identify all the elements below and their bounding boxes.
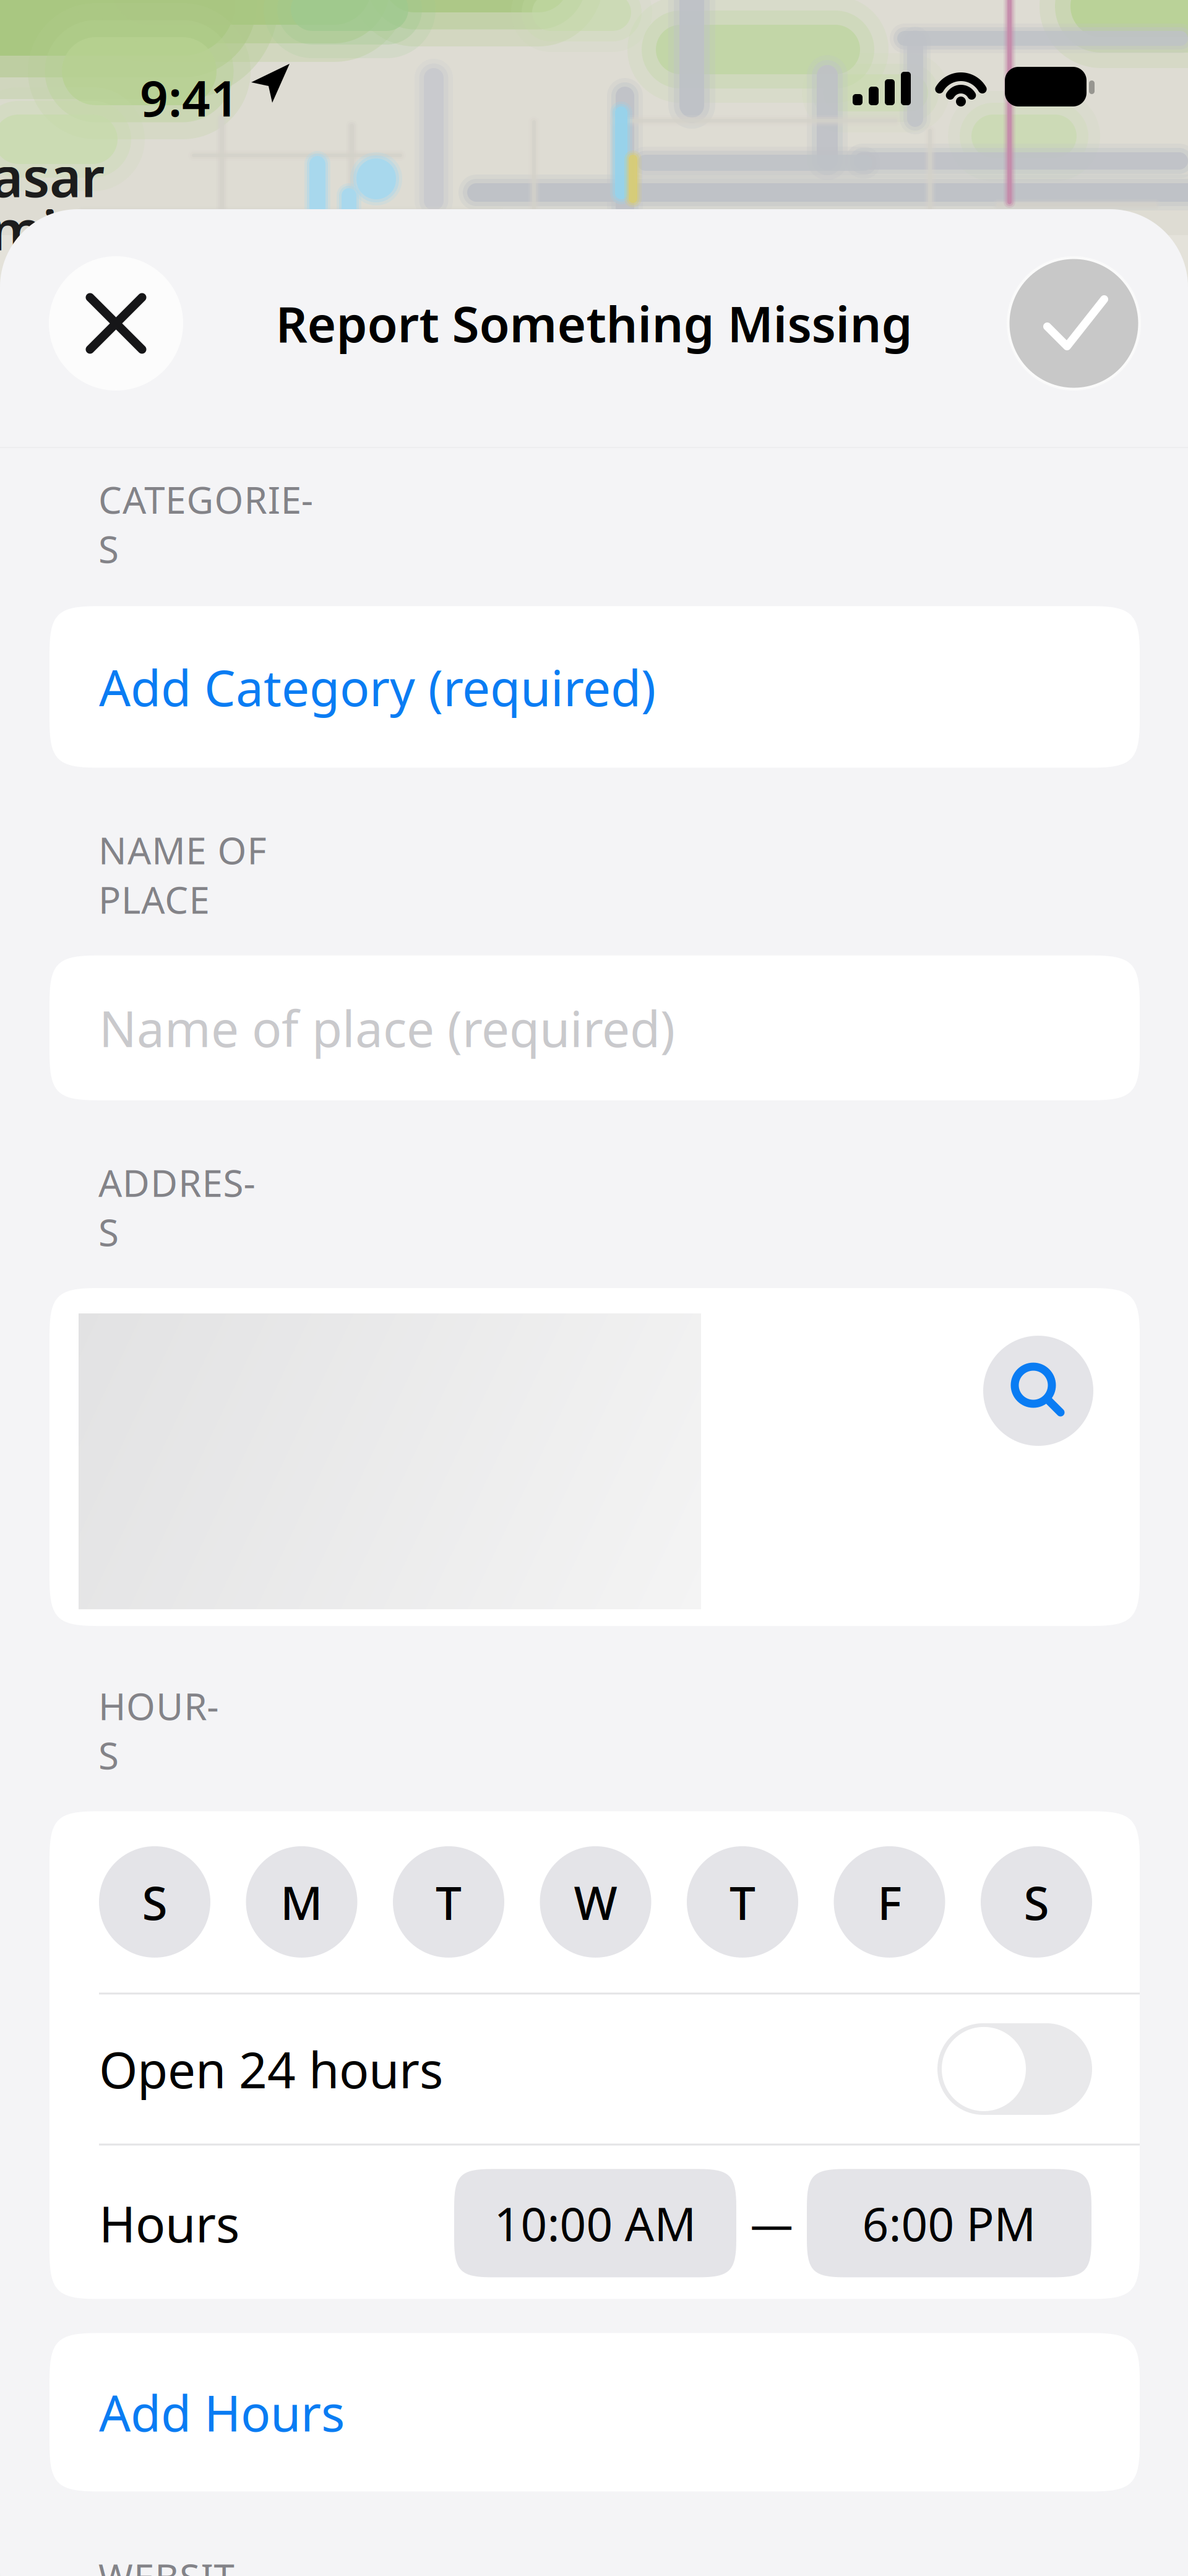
- staticText: CATEGORIES: [98, 475, 313, 573]
- staticText: Hours: [99, 2190, 239, 2256]
- button[interactable]: 10:00 AM: [454, 2169, 736, 2277]
- staticText: S: [1024, 1871, 1049, 1933]
- staticText: Add Category (required): [99, 654, 656, 720]
- staticText: Name of place (required): [99, 995, 675, 1061]
- button[interactable]: T: [393, 1846, 504, 1958]
- button[interactable]: 6:00 PM: [807, 2169, 1091, 2277]
- staticText: 9:41: [140, 64, 239, 130]
- staticText: M: [280, 1871, 323, 1933]
- staticText: ADDRESS: [98, 1158, 255, 1256]
- button[interactable]: Search for address: [983, 1336, 1093, 1446]
- staticText: F: [877, 1871, 902, 1933]
- staticText: asar: [0, 140, 105, 212]
- button[interactable]: S: [981, 1846, 1092, 1958]
- staticText: WEBSITE: [98, 2552, 246, 2576]
- staticText: T: [730, 1871, 755, 1933]
- staticText: Add Hours: [99, 2379, 345, 2445]
- button[interactable]: Submit report: [1007, 256, 1141, 391]
- staticText: Open 24 hours: [99, 2036, 443, 2102]
- staticText: HOURS: [98, 1681, 219, 1780]
- button[interactable]: T: [687, 1846, 798, 1958]
- staticText: W: [574, 1871, 617, 1933]
- staticText: T: [436, 1871, 462, 1933]
- button[interactable]: Open 24 hours: [937, 2023, 1092, 2115]
- button[interactable]: S: [99, 1846, 210, 1958]
- button[interactable]: Add Hours: [49, 2333, 1140, 2491]
- staticText: NAME OF PLACE: [98, 825, 266, 924]
- button[interactable]: F: [834, 1846, 945, 1958]
- staticText: S: [142, 1871, 167, 1933]
- staticText: —: [750, 2195, 793, 2252]
- staticText: 6:00 PM: [862, 2192, 1036, 2254]
- staticText: mia: [0, 193, 89, 265]
- button[interactable]: Add Category (required): [49, 606, 1140, 768]
- staticText: Report Something Missing: [276, 290, 912, 356]
- button[interactable]: W: [540, 1846, 651, 1958]
- button[interactable]: Close: [49, 256, 183, 391]
- button[interactable]: M: [246, 1846, 357, 1958]
- staticText: 10:00 AM: [494, 2192, 696, 2254]
